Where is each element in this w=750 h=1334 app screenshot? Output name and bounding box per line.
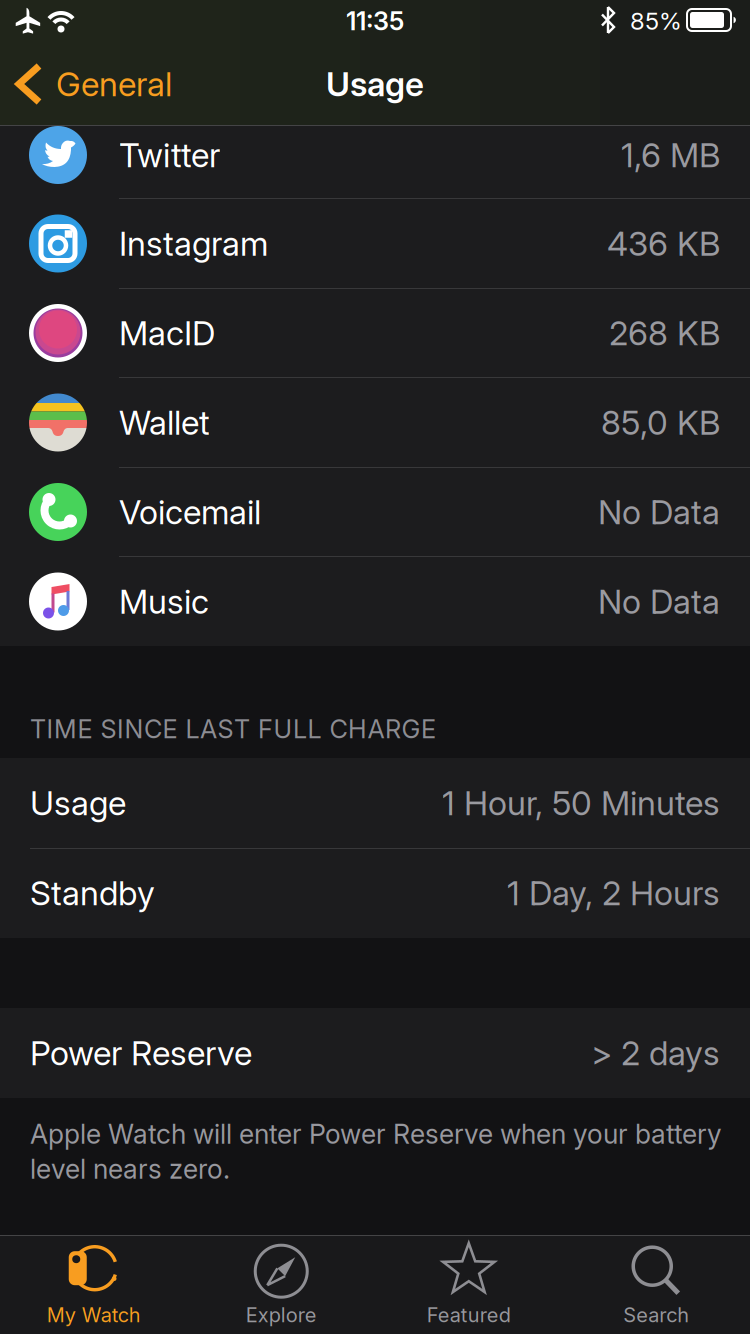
staticText: Explore — [246, 1303, 317, 1327]
button[interactable]: Standby — [0, 848, 750, 937]
button[interactable]: MacID — [0, 288, 750, 377]
staticText: Twitter — [119, 135, 220, 175]
staticText: > 2 days — [591, 1033, 720, 1073]
staticText: 1 Day, 2 Hours — [507, 873, 720, 913]
staticText: Usage — [326, 64, 424, 104]
staticText: 1 Hour, 50 Minutes — [442, 783, 720, 823]
staticText: Music — [119, 582, 209, 621]
button[interactable]: Power Reserve — [0, 1008, 750, 1097]
staticText: No Data — [598, 582, 720, 621]
button[interactable]: Explore — [188, 1237, 374, 1333]
staticText: 85% — [630, 7, 682, 35]
button[interactable]: General — [0, 41, 230, 127]
staticText: TIME SINCE LAST FULL CHARGE — [30, 714, 436, 744]
staticText: No Data — [598, 492, 720, 532]
staticText: General — [56, 64, 172, 104]
staticText: Apple Watch will enter Power Reserve whe… — [30, 1118, 722, 1150]
staticText: Wallet — [119, 403, 210, 442]
staticText: Voicemail — [119, 492, 261, 532]
staticText: Usage — [30, 783, 126, 823]
staticText: Standby — [30, 873, 155, 913]
button[interactable]: Voicemail — [0, 467, 750, 556]
staticText: 1,6 MB — [621, 135, 720, 175]
staticText: 268 KB — [609, 313, 720, 353]
staticText: 436 KB — [607, 224, 720, 263]
staticText: Featured — [427, 1303, 511, 1327]
staticText: My Watch — [47, 1303, 141, 1327]
staticText: 85,0 KB — [601, 403, 720, 442]
button[interactable]: Instagram — [0, 199, 750, 288]
button[interactable]: Twitter — [0, 123, 750, 187]
button[interactable]: Featured — [376, 1237, 562, 1333]
button[interactable]: Usage — [0, 758, 750, 847]
staticText: level nears zero. — [30, 1153, 230, 1185]
staticText: Power Reserve — [30, 1033, 252, 1073]
staticText: Search — [623, 1303, 689, 1327]
button[interactable]: Music — [0, 557, 750, 646]
staticText: Instagram — [119, 224, 268, 263]
staticText: 11:35 — [346, 6, 404, 36]
button[interactable]: Search — [563, 1237, 749, 1333]
staticText: MacID — [119, 313, 215, 353]
button[interactable]: My Watch — [1, 1237, 187, 1333]
button[interactable]: Wallet — [0, 378, 750, 467]
